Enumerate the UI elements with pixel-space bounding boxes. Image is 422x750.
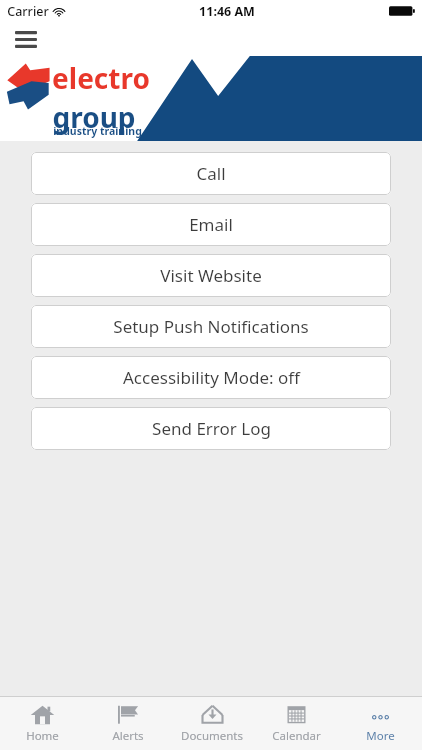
staticText: Send Error Log	[152, 417, 271, 440]
staticText: industry training	[53, 124, 142, 138]
button[interactable]: Send Error Log	[31, 407, 391, 450]
staticText: Accessibility Mode: off	[123, 366, 300, 389]
button[interactable]: Alerts	[85, 697, 170, 750]
staticText: Email	[189, 213, 233, 236]
staticText: Call	[196, 162, 226, 185]
button[interactable]: Email	[31, 203, 391, 246]
staticText: Setup Push Notifications	[113, 315, 309, 338]
staticText: 11:46 AM	[199, 3, 255, 20]
button[interactable]: Visit Website	[31, 254, 391, 297]
button[interactable]: Call	[31, 152, 391, 195]
button[interactable]: Setup Push Notifications	[31, 305, 391, 348]
staticText: Home	[26, 728, 59, 744]
button[interactable]: Accessibility Mode: off	[31, 356, 391, 399]
button[interactable]: Menu	[13, 28, 39, 50]
staticText: More	[366, 728, 395, 744]
button[interactable]: Calendar	[254, 697, 338, 750]
button[interactable]: Documents	[170, 697, 254, 750]
staticText: Visit Website	[160, 264, 262, 287]
staticText: Carrier	[7, 3, 49, 20]
button[interactable]: More	[338, 697, 422, 750]
staticText: Calendar	[272, 728, 321, 744]
staticText: Documents	[181, 728, 243, 744]
staticText: group	[52, 98, 136, 136]
button[interactable]: Home	[0, 697, 85, 750]
staticText: electro	[52, 59, 150, 97]
staticText: Alerts	[112, 728, 144, 744]
